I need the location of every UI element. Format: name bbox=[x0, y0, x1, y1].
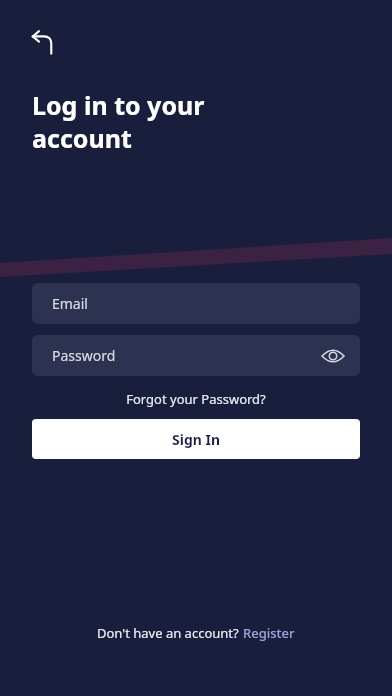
staticText: Password bbox=[52, 346, 116, 365]
staticText: Register bbox=[243, 624, 295, 642]
staticText: Email bbox=[52, 294, 88, 313]
staticText: Forgot your Password? bbox=[126, 390, 266, 408]
button[interactable]: Back bbox=[22, 20, 66, 64]
button[interactable]: Show password bbox=[316, 339, 350, 373]
staticText: Sign In bbox=[172, 430, 221, 449]
staticText: Log in to your account bbox=[32, 88, 205, 155]
button[interactable]: Forgot your Password? bbox=[118, 388, 274, 410]
button[interactable]: Email bbox=[32, 283, 360, 324]
button[interactable]: Password bbox=[32, 335, 360, 376]
button[interactable]: Sign In bbox=[32, 419, 360, 459]
button[interactable]: Register bbox=[243, 624, 295, 642]
staticText: Don't have an account? bbox=[97, 624, 243, 642]
